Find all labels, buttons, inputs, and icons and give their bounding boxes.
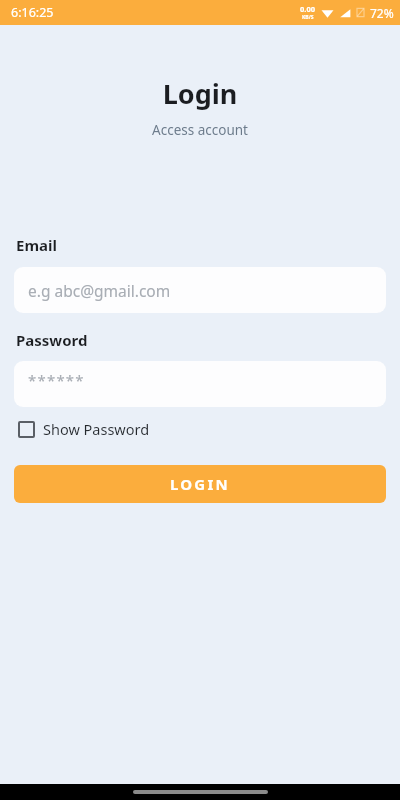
button[interactable]: Show Password (18, 419, 150, 439)
staticText: KB/S (302, 14, 314, 21)
button[interactable]: e.g abc@gmail.com (14, 267, 386, 313)
staticText: Email (16, 235, 57, 255)
staticText: Access account (0, 121, 400, 139)
staticText: Login (0, 75, 400, 112)
staticText: e.g abc@gmail.com (28, 280, 171, 301)
staticText: 0.00 (300, 4, 315, 14)
other: Home gesture (133, 790, 268, 794)
staticText: Password (16, 330, 88, 350)
staticText: ****** (28, 370, 85, 390)
staticText: Show Password (43, 419, 150, 439)
staticText: 6:16:25 (11, 4, 54, 21)
staticText: LOGIN (170, 474, 230, 494)
button[interactable]: LOGIN (14, 465, 386, 503)
button[interactable]: ****** (14, 361, 386, 407)
staticText: 72% (370, 5, 394, 21)
